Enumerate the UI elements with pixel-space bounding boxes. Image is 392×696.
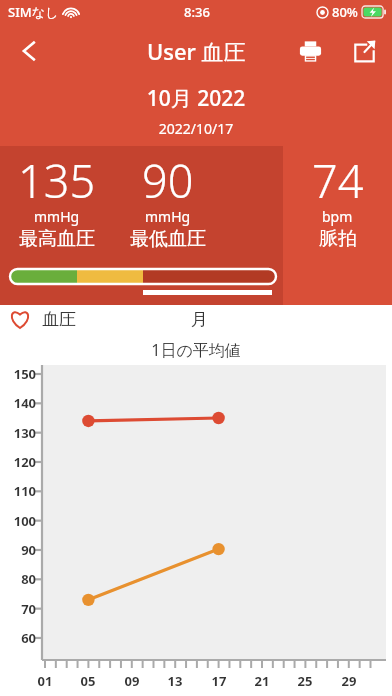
- staticText: 13: [160, 672, 190, 690]
- staticText: 01: [30, 672, 60, 690]
- staticText: 74: [312, 150, 364, 211]
- staticText: 29: [334, 672, 364, 690]
- staticText: 最高血圧: [19, 227, 95, 251]
- staticText: 135: [18, 150, 96, 211]
- staticText: 140: [0, 394, 36, 412]
- staticText: 05: [73, 672, 103, 690]
- staticText: mmHg: [34, 207, 80, 226]
- staticText: 2022/10/17: [0, 119, 392, 138]
- staticText: 90: [142, 150, 194, 211]
- staticText: 110: [0, 482, 36, 500]
- staticText: 80: [0, 570, 36, 588]
- staticText: 90: [0, 541, 36, 559]
- staticText: 脈拍: [319, 227, 357, 251]
- staticText: 80%: [332, 3, 358, 21]
- staticText: 最低血圧: [130, 227, 206, 251]
- staticText: 8:36: [184, 3, 210, 21]
- staticText: bpm: [322, 207, 353, 226]
- button[interactable]: 血圧: [0, 305, 392, 333]
- staticText: 120: [0, 453, 36, 471]
- button[interactable]: Back: [6, 27, 54, 75]
- staticText: SIMなし: [8, 3, 59, 21]
- staticText: 17: [204, 672, 234, 690]
- button[interactable]: Share: [342, 29, 386, 73]
- staticText: 血圧: [42, 309, 76, 330]
- staticText: 09: [117, 672, 147, 690]
- staticText: mmHg: [145, 207, 191, 226]
- staticText: 月: [191, 309, 208, 330]
- staticText: 150: [0, 365, 36, 383]
- button[interactable]: Print: [288, 29, 332, 73]
- staticText: 21: [247, 672, 277, 690]
- staticText: 100: [0, 512, 36, 530]
- staticText: 70: [0, 600, 36, 618]
- staticText: 60: [0, 629, 36, 647]
- staticText: 10月 2022: [0, 84, 392, 113]
- staticText: 1日の平均値: [0, 339, 392, 361]
- staticText: 25: [290, 672, 320, 690]
- staticText: User 血圧: [147, 36, 246, 66]
- staticText: 130: [0, 424, 36, 442]
